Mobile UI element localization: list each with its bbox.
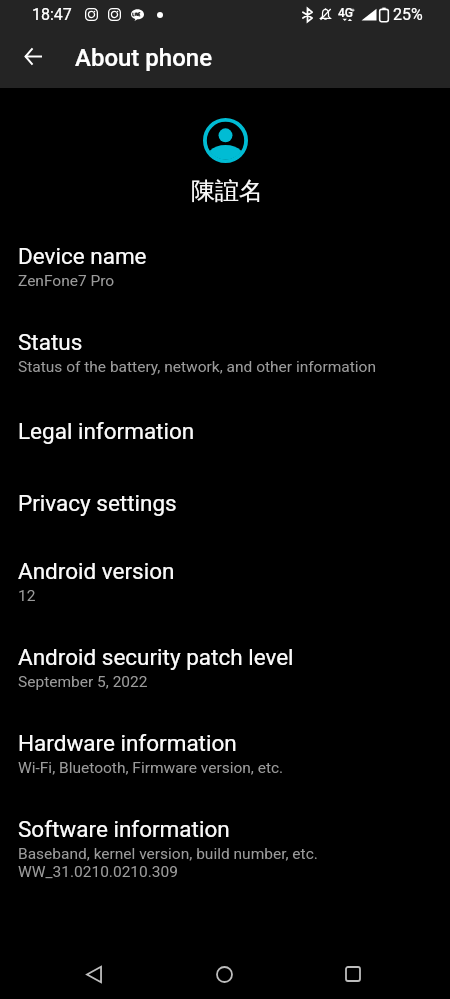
staticText: Legal information bbox=[18, 418, 195, 444]
button[interactable]: Device name bbox=[0, 223, 450, 309]
button[interactable]: Legal information bbox=[0, 398, 450, 463]
staticText: Status of the battery, network, and othe… bbox=[18, 358, 376, 376]
staticText: 12 bbox=[18, 587, 36, 605]
button[interactable]: Recents bbox=[323, 944, 383, 999]
staticText: Software information bbox=[18, 816, 230, 842]
staticText: ZenFone7 Pro bbox=[18, 272, 115, 290]
button[interactable]: Back bbox=[64, 944, 124, 999]
button[interactable]: Back bbox=[9, 33, 57, 80]
button[interactable]: Software information bbox=[0, 796, 450, 900]
staticText: Android security patch level bbox=[18, 644, 294, 670]
staticText: Privacy settings bbox=[18, 490, 177, 516]
staticText: 陳誼名 bbox=[191, 176, 263, 206]
staticText: Device name bbox=[18, 243, 147, 269]
staticText: Hardware information bbox=[18, 730, 237, 756]
button[interactable]: Privacy settings bbox=[0, 470, 450, 535]
staticText: Status bbox=[18, 329, 83, 355]
button[interactable]: Hardware information bbox=[0, 710, 450, 796]
button[interactable]: Home bbox=[194, 944, 254, 999]
staticText: September 5, 2022 bbox=[18, 673, 148, 691]
staticText: About phone bbox=[75, 44, 212, 72]
staticText: Android version bbox=[18, 558, 175, 584]
staticText: 25% bbox=[393, 5, 423, 24]
staticText: 18:47 bbox=[32, 5, 72, 24]
button[interactable]: Status bbox=[0, 309, 450, 395]
button[interactable]: Android security patch level bbox=[0, 624, 450, 710]
staticText: 4G bbox=[338, 6, 353, 20]
staticText: Wi-Fi, Bluetooth, Firmware version, etc. bbox=[18, 759, 284, 777]
staticText: Baseband, kernel version, build number, … bbox=[18, 845, 318, 881]
button[interactable]: Android version bbox=[0, 538, 450, 624]
